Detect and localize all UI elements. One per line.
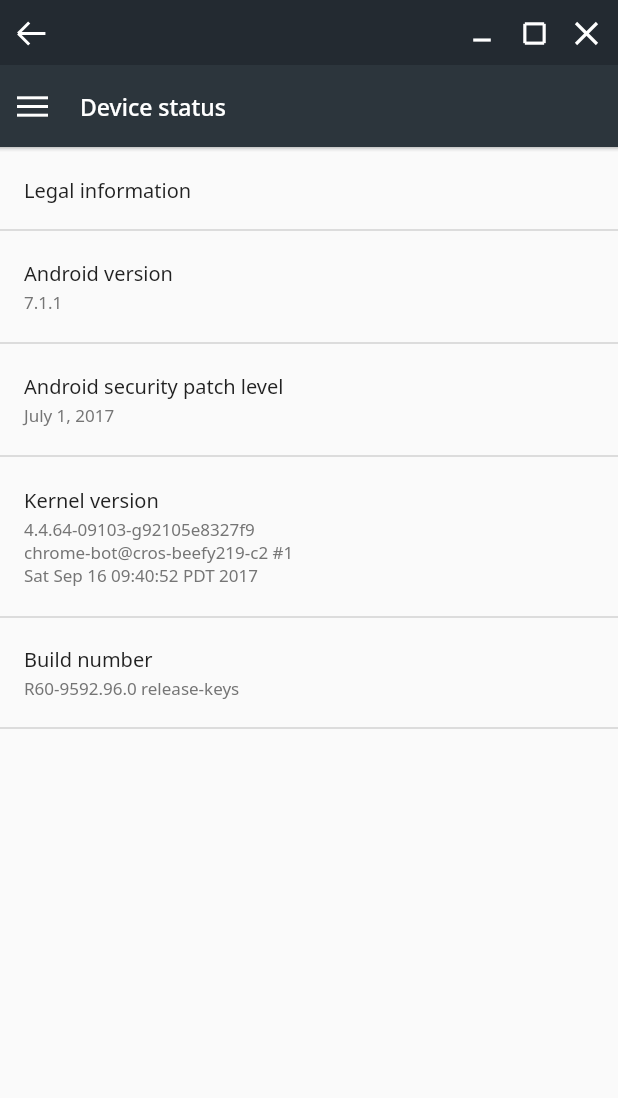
staticText: R60-9592.96.0 release-keys: [24, 677, 240, 700]
button[interactable]: Close: [560, 7, 612, 59]
button[interactable]: Build number: [0, 618, 618, 727]
button[interactable]: Android security patch level: [0, 344, 618, 455]
staticText: Build number: [24, 646, 153, 673]
button[interactable]: Kernel version: [0, 457, 618, 616]
staticText: 7.1.1: [24, 291, 63, 314]
staticText: Legal information: [24, 177, 192, 204]
button[interactable]: Back: [5, 7, 57, 59]
button[interactable]: Minimize: [456, 7, 508, 59]
staticText: Android version: [24, 260, 173, 287]
staticText: Sat Sep 16 09:40:52 PDT 2017: [24, 564, 258, 587]
staticText: chrome-bot@cros-beefy219-c2 #1: [24, 541, 294, 564]
button[interactable]: Open navigation menu: [5, 79, 59, 133]
staticText: July 1, 2017: [24, 404, 115, 427]
staticText: Android security patch level: [24, 373, 284, 400]
button[interactable]: Maximize: [508, 7, 560, 59]
staticText: Kernel version: [24, 487, 159, 514]
button[interactable]: Legal information: [0, 152, 618, 229]
staticText: Device status: [80, 91, 226, 122]
button[interactable]: Android version: [0, 231, 618, 342]
staticText: 4.4.64-09103-g92105e8327f9: [24, 518, 255, 541]
